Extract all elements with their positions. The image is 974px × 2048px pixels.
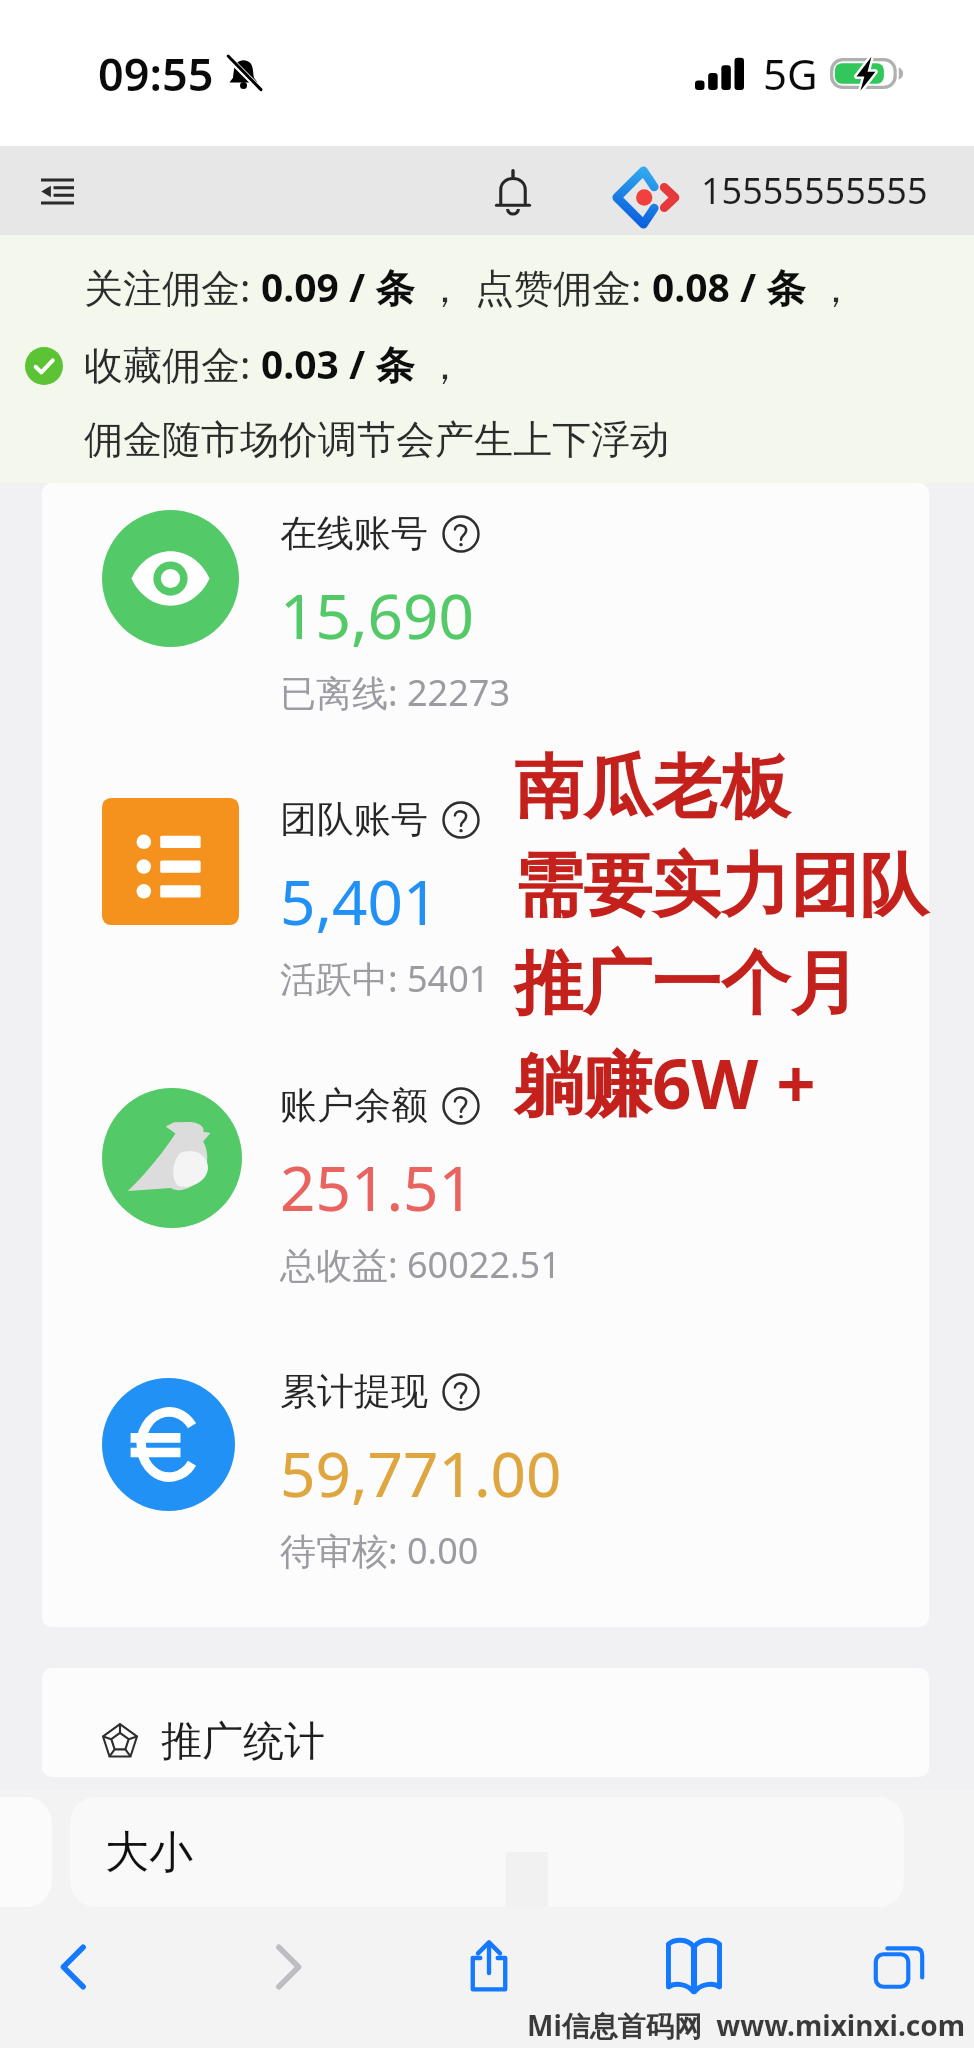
- button[interactable]: Bookmarks: [663, 1934, 725, 1996]
- staticText: 南瓜老板 需要实力团队 推广一个月 躺赚6W +: [514, 745, 928, 1129]
- staticText: 已离线: 22273: [280, 668, 510, 717]
- button[interactable]: Forward: [256, 1936, 318, 1998]
- button[interactable]: Back: [44, 1936, 106, 1998]
- button[interactable]: 账户余额: [42, 1055, 929, 1341]
- staticText: Mi信息首码网 www.mixinxi.com: [527, 2006, 966, 2044]
- staticText: 收藏佣金:: [84, 337, 261, 390]
- staticText: 0.08 / 条: [652, 260, 806, 313]
- staticText: ，: [806, 260, 856, 313]
- button[interactable]: 推广统计: [42, 1668, 929, 1777]
- staticText: 0.03 / 条: [261, 337, 415, 390]
- staticText: 09:55: [98, 43, 214, 104]
- button[interactable]: Menu: [26, 160, 88, 222]
- button[interactable]: 在线账号: [42, 483, 929, 769]
- staticText: 251.51: [280, 1145, 474, 1229]
- staticText: 待审核: 0.00: [280, 1526, 479, 1575]
- button[interactable]: Tabs: [868, 1936, 930, 1998]
- staticText: 累计提现: [280, 1368, 428, 1415]
- staticText: 大小: [105, 1825, 193, 1880]
- button[interactable]: 累计提现: [42, 1341, 929, 1627]
- staticText: 0.09 / 条: [261, 260, 415, 313]
- staticText: 推广统计: [161, 1716, 325, 1768]
- button[interactable]: 15555555555: [612, 155, 928, 226]
- staticText: 关注佣金:: [84, 260, 261, 313]
- button[interactable]: Share: [458, 1934, 520, 1996]
- staticText: 5G: [763, 45, 818, 102]
- staticText: 15555555555: [701, 166, 928, 215]
- button[interactable]: 团队账号: [42, 769, 929, 1055]
- staticText: 59,771.00: [280, 1431, 562, 1515]
- staticText: 账户余额: [280, 1082, 428, 1129]
- staticText: ，: [415, 260, 475, 313]
- button[interactable]: Notifications: [481, 159, 545, 223]
- staticText: 在线账号: [280, 510, 428, 557]
- staticText: 团队账号: [280, 796, 428, 843]
- staticText: 5,401: [280, 859, 439, 943]
- button[interactable]: 大小: [70, 1797, 904, 1907]
- staticText: 活跃中: 5401: [280, 954, 490, 1003]
- staticText: 佣金随市场价调节会产生上下浮动: [84, 415, 669, 464]
- staticText: 总收益: 60022.51: [280, 1240, 561, 1289]
- staticText: ，: [415, 337, 465, 390]
- staticText: 15,690: [280, 573, 474, 657]
- staticText: 点赞佣金:: [475, 260, 652, 313]
